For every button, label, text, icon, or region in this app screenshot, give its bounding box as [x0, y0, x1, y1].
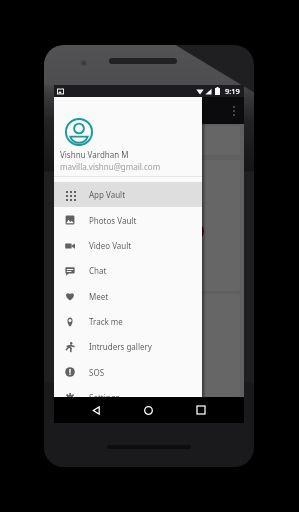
button[interactable]: Home: [130, 397, 166, 423]
staticText: Meet: [89, 291, 109, 302]
staticText: App Vault: [89, 189, 126, 200]
staticText: 9:19: [225, 86, 240, 96]
button[interactable]: Track me: [54, 309, 202, 334]
button[interactable]: Record: [185, 222, 204, 241]
button[interactable]: App Vault: [54, 182, 202, 207]
staticText: Photos Vault: [89, 215, 137, 226]
button[interactable]: Chat: [54, 258, 202, 283]
staticText: Video Vault: [89, 240, 132, 251]
button[interactable]: Back: [78, 397, 114, 423]
staticText: Settings: [89, 392, 120, 403]
button[interactable]: Video Vault: [54, 233, 202, 258]
button[interactable]: Settings: [54, 385, 202, 410]
staticText: Track me: [89, 316, 123, 327]
staticText: mavilla.vishnu@gmail.com: [60, 161, 161, 172]
staticText: SOS: [89, 367, 105, 378]
button[interactable]: Meet: [54, 283, 202, 309]
staticText: Vishnu Vardhan M: [60, 149, 129, 160]
staticText: Chat: [89, 265, 107, 276]
staticText: Intruders gallery: [89, 341, 152, 352]
button[interactable]: SOS: [54, 359, 202, 385]
button[interactable]: Intruders gallery: [54, 334, 202, 359]
button[interactable]: Photos Vault: [54, 207, 202, 233]
button[interactable]: Recents: [183, 397, 219, 423]
